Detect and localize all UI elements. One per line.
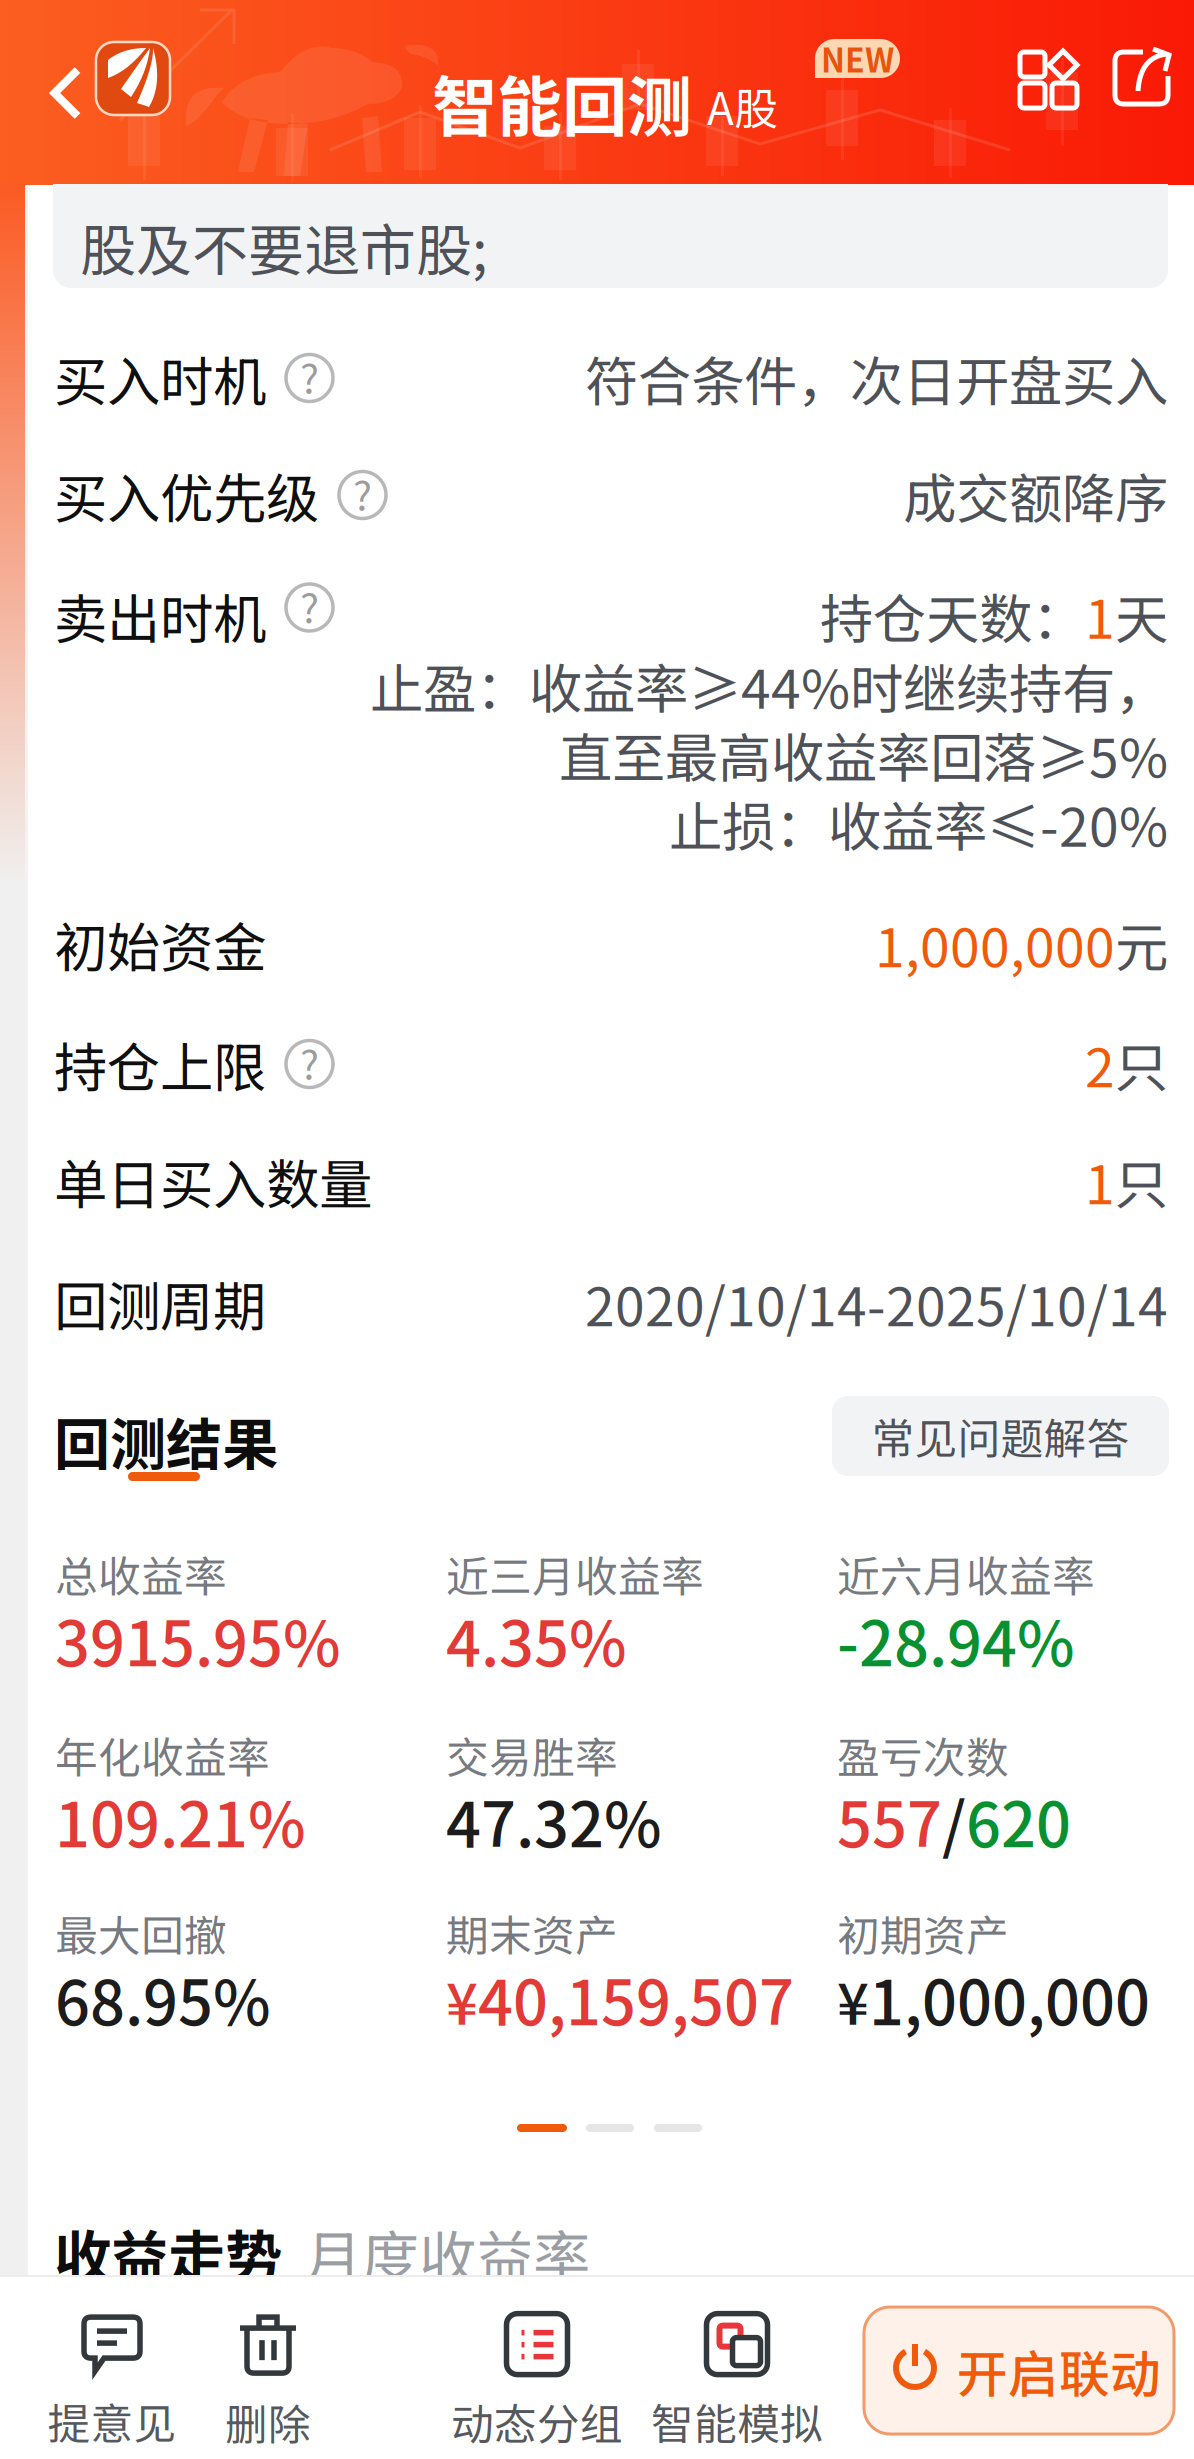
staticText: 盈亏次数 [837, 1724, 1009, 1786]
staticText: 成交额降序 [903, 456, 1168, 534]
staticText: 期末资产 [446, 1902, 618, 1964]
staticText: 常见问题解答 [871, 1405, 1129, 1467]
staticText: 买入优先级 [54, 456, 319, 534]
staticText: 收益走势 [54, 2212, 282, 2295]
staticText: 月度收益率 [305, 2212, 590, 2295]
staticText: 620 [966, 1776, 1071, 1865]
staticText: 删除 [225, 2391, 311, 2453]
staticText: 买入时机 [54, 339, 266, 417]
staticText: 1 [1085, 1142, 1115, 1220]
staticText: 68.95% [55, 1954, 271, 2043]
staticText: 初始资金 [54, 905, 266, 983]
staticText: 直至最高收益率回落≥5% [559, 716, 1168, 793]
staticText: 只 [1115, 1142, 1168, 1220]
staticText: ¥ [837, 1960, 869, 2041]
staticText: 回测结果 [54, 1400, 278, 1481]
staticText: 40,159,507 [478, 1954, 794, 2043]
staticText: 单日买入数量 [54, 1142, 372, 1220]
button[interactable]: 应用图标 [96, 42, 170, 115]
staticText: 止盈：收益率≥44%时继续持有， [370, 647, 1168, 724]
staticText: 最大回撤 [55, 1902, 227, 1964]
staticText: 只 [1115, 1025, 1168, 1103]
staticText: / [942, 1776, 966, 1865]
staticText: ? [300, 576, 319, 634]
button[interactable]: 动态分组 [427, 2308, 647, 2458]
staticText: -28.94% [837, 1595, 1075, 1684]
staticText: 持仓上限 [54, 1025, 266, 1103]
staticText: 109.21% [55, 1776, 306, 1865]
button[interactable]: 常见问题解答 [832, 1396, 1169, 1476]
staticText: 47.32% [446, 1776, 662, 1865]
staticText: 4.35% [446, 1595, 627, 1684]
button[interactable]: 分享 [1111, 47, 1172, 109]
staticText: 557 [837, 1776, 942, 1865]
staticText: NEW [821, 35, 894, 82]
staticText: 提意见 [47, 2390, 176, 2452]
staticText: ? [353, 464, 372, 522]
staticText: 交易胜率 [446, 1724, 618, 1786]
staticText: 动态分组 [451, 2391, 623, 2452]
staticText: 3915.95% [55, 1595, 341, 1684]
staticText: 1,000,000 [875, 905, 1115, 983]
staticText: 2 [1085, 1025, 1115, 1103]
staticText: 1 [1085, 577, 1115, 654]
button[interactable]: 更多应用 [1020, 49, 1077, 108]
staticText: 年化收益率 [55, 1724, 270, 1786]
staticText: A股 [707, 74, 778, 138]
staticText: 近六月收益率 [837, 1543, 1095, 1605]
staticText: ¥ [446, 1960, 478, 2041]
staticText: ? [300, 1033, 319, 1091]
staticText: 近三月收益率 [446, 1543, 704, 1605]
staticText: 智能模拟 [651, 2391, 823, 2452]
staticText: 持仓天数： [820, 577, 1085, 654]
button[interactable]: 删除 [158, 2308, 378, 2458]
staticText: 符合条件，次日开盘买入 [585, 339, 1168, 417]
staticText: 初期资产 [837, 1902, 1009, 1964]
staticText: 智能回测 [432, 55, 692, 150]
staticText: 股及不要退市股; [80, 206, 488, 287]
staticText: 卖出时机 [54, 577, 266, 654]
staticText: 止损：收益率≤-20% [669, 785, 1168, 862]
button[interactable]: 智能模拟 [627, 2308, 847, 2458]
button[interactable]: 开启联动 [864, 2307, 1174, 2434]
button[interactable]: 提意见 [2, 2308, 222, 2458]
staticText: 回测周期 [54, 1264, 266, 1342]
staticText: 开启联动 [957, 2334, 1161, 2407]
staticText: 天 [1115, 577, 1168, 654]
staticText: ? [300, 347, 319, 405]
staticText: 1,000,000 [869, 1954, 1150, 2043]
button[interactable]: 返回 [28, 45, 104, 141]
staticText: 元 [1115, 905, 1168, 983]
staticText: 2020/10/14-2025/10/14 [585, 1264, 1168, 1342]
staticText: 总收益率 [55, 1543, 227, 1605]
